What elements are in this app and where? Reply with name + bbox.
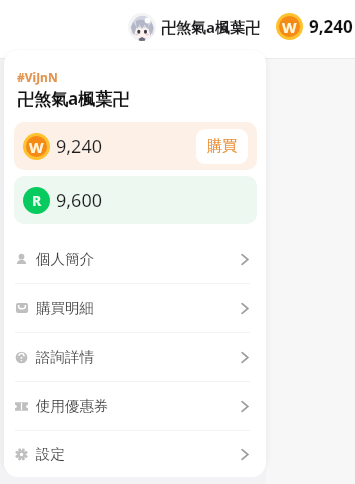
staticText: R	[32, 191, 42, 210]
button[interactable]: 個人簡介	[4, 235, 266, 283]
button[interactable]: 購買明細	[4, 284, 266, 332]
staticText: 諮詢詳情	[36, 348, 94, 366]
staticText: 9,600	[56, 188, 103, 213]
button[interactable]: 設定	[4, 431, 266, 477]
staticText: 使用優惠券	[36, 397, 109, 415]
staticText: 卍煞氣a楓葉卍	[17, 87, 130, 110]
staticText: 設定	[36, 445, 65, 463]
staticText: 個人簡介	[36, 250, 94, 268]
staticText: 卍煞氣a楓葉卍	[161, 17, 260, 37]
staticText: W	[29, 137, 44, 157]
staticText: W	[282, 17, 297, 37]
staticText: 9,240	[309, 15, 353, 38]
staticText: 9,240	[56, 134, 103, 159]
button[interactable]: 使用優惠券	[4, 382, 266, 430]
button[interactable]: W coin balance 9,240	[276, 12, 353, 40]
button[interactable]: 諮詢詳情	[4, 333, 266, 381]
button[interactable]: 卍煞氣a楓葉卍	[123, 7, 264, 46]
button[interactable]: 購買	[196, 129, 248, 164]
staticText: #ViJnN	[17, 69, 58, 85]
staticText: 購買	[207, 137, 237, 156]
staticText: 購買明細	[36, 299, 94, 317]
